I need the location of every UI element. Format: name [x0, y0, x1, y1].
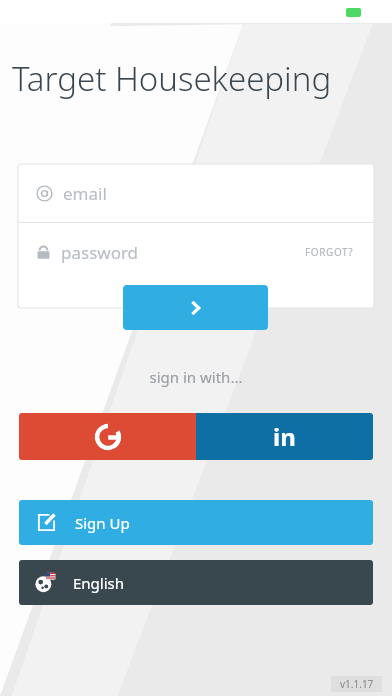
button[interactable]: password	[18, 223, 374, 281]
button[interactable]: FORGOT?	[301, 239, 358, 265]
staticText: email	[63, 182, 107, 205]
staticText: English	[73, 573, 125, 593]
staticText: Target Housekeeping	[12, 56, 392, 101]
button[interactable]: Sign in with Google	[19, 413, 196, 460]
staticText: password	[61, 241, 139, 264]
button[interactable]: Sign Up	[19, 500, 373, 545]
button[interactable]: Sign in	[123, 285, 268, 330]
button[interactable]: email	[18, 164, 374, 222]
staticText: in	[273, 420, 296, 453]
staticText: FORGOT?	[305, 245, 354, 259]
staticText: v1.1.17	[340, 677, 374, 691]
button[interactable]: Sign in with LinkedIn	[196, 413, 373, 460]
staticText: sign in with...	[0, 367, 392, 387]
staticText: Sign Up	[75, 513, 130, 533]
button[interactable]: English	[19, 560, 373, 605]
